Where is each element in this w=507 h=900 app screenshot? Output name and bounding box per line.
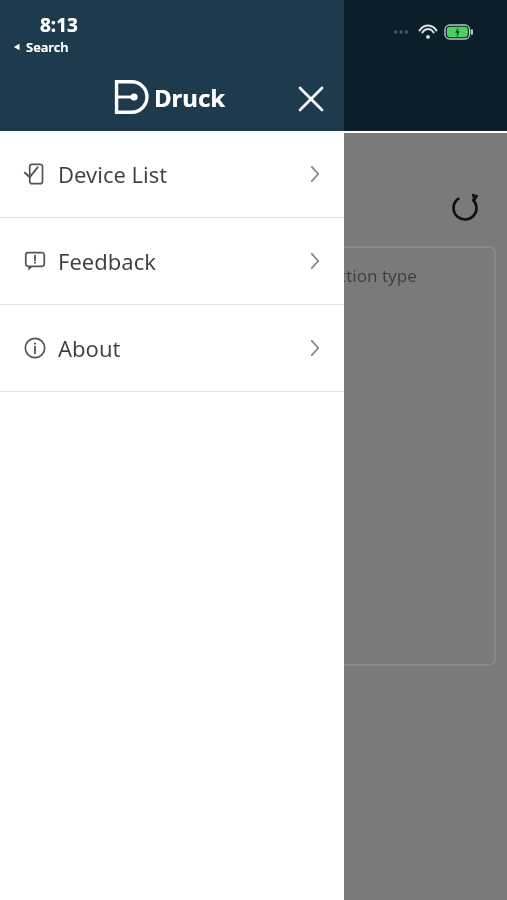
- button[interactable]: Close: [291, 79, 331, 119]
- button[interactable]: Device List: [0, 131, 344, 217]
- staticText: About: [58, 333, 121, 363]
- button[interactable]: About: [0, 305, 344, 391]
- button[interactable]: Refresh: [447, 190, 483, 226]
- staticText: Search: [26, 38, 69, 56]
- staticText: ction type: [338, 264, 417, 287]
- staticText: Druck: [154, 81, 226, 114]
- staticText: 8:13: [40, 12, 78, 38]
- staticText: Device List: [58, 159, 168, 189]
- staticText: Feedback: [58, 246, 156, 276]
- button[interactable]: Feedback: [0, 218, 344, 304]
